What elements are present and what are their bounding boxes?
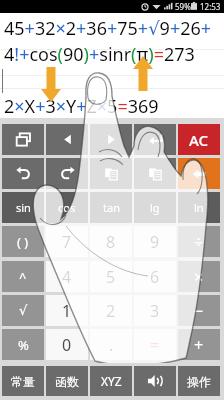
button[interactable]: cos bbox=[46, 192, 88, 223]
staticText: 0 bbox=[62, 334, 72, 356]
button[interactable]: 3 bbox=[134, 295, 176, 326]
button[interactable]: √ bbox=[2, 295, 44, 326]
staticText: % bbox=[18, 336, 29, 354]
staticText: 2 bbox=[106, 300, 116, 322]
staticText: 45+32×2+36+75+√9+26+ bbox=[4, 16, 212, 41]
staticText: ln bbox=[194, 200, 204, 215]
button[interactable]: Paste bbox=[134, 158, 176, 189]
staticText: 9 bbox=[150, 231, 160, 253]
button[interactable]: 操作 bbox=[178, 366, 220, 396]
button[interactable]: 8 bbox=[90, 226, 132, 257]
staticText: ÷ bbox=[194, 231, 204, 253]
staticText: 常量 bbox=[11, 374, 35, 389]
staticText: + bbox=[194, 334, 204, 356]
staticText: sin bbox=[16, 200, 31, 215]
button[interactable]: 4 bbox=[46, 261, 88, 292]
button[interactable]: Move left bbox=[46, 124, 88, 155]
button[interactable]: 1 bbox=[46, 295, 88, 326]
button[interactable]: 6 bbox=[134, 261, 176, 292]
button[interactable]: + bbox=[178, 329, 220, 360]
button[interactable]: Sound bbox=[134, 366, 176, 396]
button[interactable]: Move right bbox=[90, 124, 132, 155]
staticText: 3 bbox=[150, 300, 160, 322]
button[interactable]: Backspace bbox=[134, 124, 176, 155]
staticText: AC bbox=[189, 130, 209, 150]
staticText: 5 bbox=[106, 266, 116, 288]
staticText: 函数 bbox=[55, 374, 79, 389]
button[interactable]: 7 bbox=[46, 226, 88, 257]
staticText: 操作 bbox=[187, 374, 211, 389]
button[interactable]: 9 bbox=[134, 226, 176, 257]
staticText: × bbox=[194, 266, 204, 288]
staticText: 8 bbox=[106, 231, 116, 253]
button[interactable]: ln bbox=[178, 192, 220, 223]
staticText: √ bbox=[19, 303, 28, 318]
button[interactable]: . bbox=[90, 329, 132, 360]
staticText: 6 bbox=[150, 266, 160, 288]
button[interactable]: XYZ bbox=[90, 366, 132, 396]
button[interactable]: Redo bbox=[46, 158, 88, 189]
staticText: 59% bbox=[175, 1, 191, 12]
staticText: 12:53 bbox=[200, 1, 221, 12]
button[interactable]: Undo bbox=[2, 158, 44, 189]
staticText: 2×X+3×Y+Z×5=369 bbox=[4, 94, 159, 119]
button[interactable]: 0 bbox=[46, 329, 88, 360]
staticText: 7 bbox=[62, 231, 72, 253]
staticText: tan bbox=[103, 200, 120, 215]
button[interactable]: 5 bbox=[90, 261, 132, 292]
staticText: 4!+cos(90)+sinr(π)=273 bbox=[4, 42, 195, 67]
button[interactable]: ÷ bbox=[178, 226, 220, 257]
staticText: XYZ bbox=[101, 373, 122, 389]
button[interactable]: Multi window bbox=[2, 124, 44, 155]
button[interactable]: % bbox=[2, 329, 44, 360]
staticText: lg bbox=[150, 200, 160, 215]
button[interactable]: 2 bbox=[90, 295, 132, 326]
staticText: . bbox=[109, 334, 114, 356]
button[interactable]: Copy bbox=[90, 158, 132, 189]
button[interactable]: × bbox=[178, 261, 220, 292]
button[interactable]: sin bbox=[2, 192, 44, 223]
button[interactable]: 函数 bbox=[46, 366, 88, 396]
button[interactable]: − bbox=[178, 295, 220, 326]
button[interactable]: tan bbox=[90, 192, 132, 223]
button[interactable]: AC bbox=[178, 124, 220, 155]
staticText: ( ) bbox=[17, 233, 29, 251]
staticText: ^ bbox=[19, 268, 27, 286]
staticText: 4 bbox=[62, 266, 72, 288]
staticText: = bbox=[150, 334, 160, 356]
button[interactable]: ^ bbox=[2, 261, 44, 292]
button[interactable]: Enter bbox=[178, 158, 220, 189]
button[interactable]: ( ) bbox=[2, 226, 44, 257]
button[interactable]: lg bbox=[134, 192, 176, 223]
staticText: − bbox=[194, 300, 204, 322]
button[interactable]: 常量 bbox=[2, 366, 44, 396]
staticText: 1 bbox=[62, 300, 72, 322]
staticText: cos bbox=[58, 200, 76, 215]
